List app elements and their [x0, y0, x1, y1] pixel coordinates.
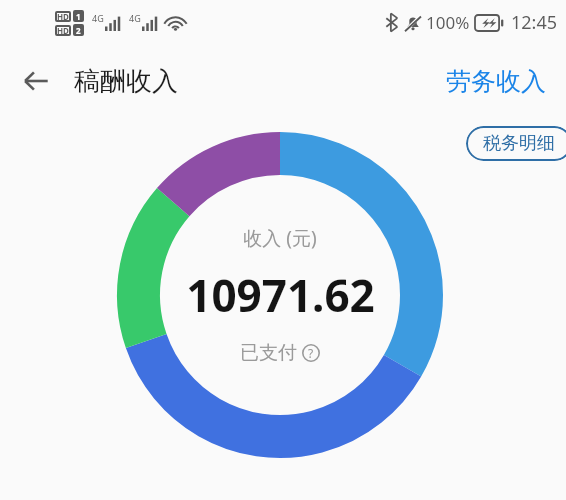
staticText: HD	[57, 11, 69, 22]
staticText: 4G	[129, 12, 141, 24]
staticText: 劳务收入	[446, 66, 546, 97]
staticText: 2	[76, 25, 81, 36]
staticText: 1	[76, 11, 81, 22]
staticText: 收入 (元)	[243, 225, 317, 251]
staticText: ?	[308, 345, 314, 361]
button[interactable]: 劳务收入	[426, 56, 566, 107]
other: Help	[302, 344, 320, 362]
button[interactable]: 税务明细	[466, 126, 566, 161]
staticText: 已支付	[240, 341, 297, 365]
staticText: 稿酬收入	[74, 65, 178, 98]
staticText: 4G	[92, 12, 104, 24]
staticText: 12:45	[511, 10, 558, 35]
button[interactable]: Back	[12, 57, 60, 105]
staticText: 100%	[426, 11, 470, 34]
button[interactable]: 已支付	[240, 341, 320, 365]
staticText: HD	[57, 25, 69, 36]
staticText: 10971.62	[186, 265, 375, 325]
staticText: 税务明细	[483, 132, 555, 155]
